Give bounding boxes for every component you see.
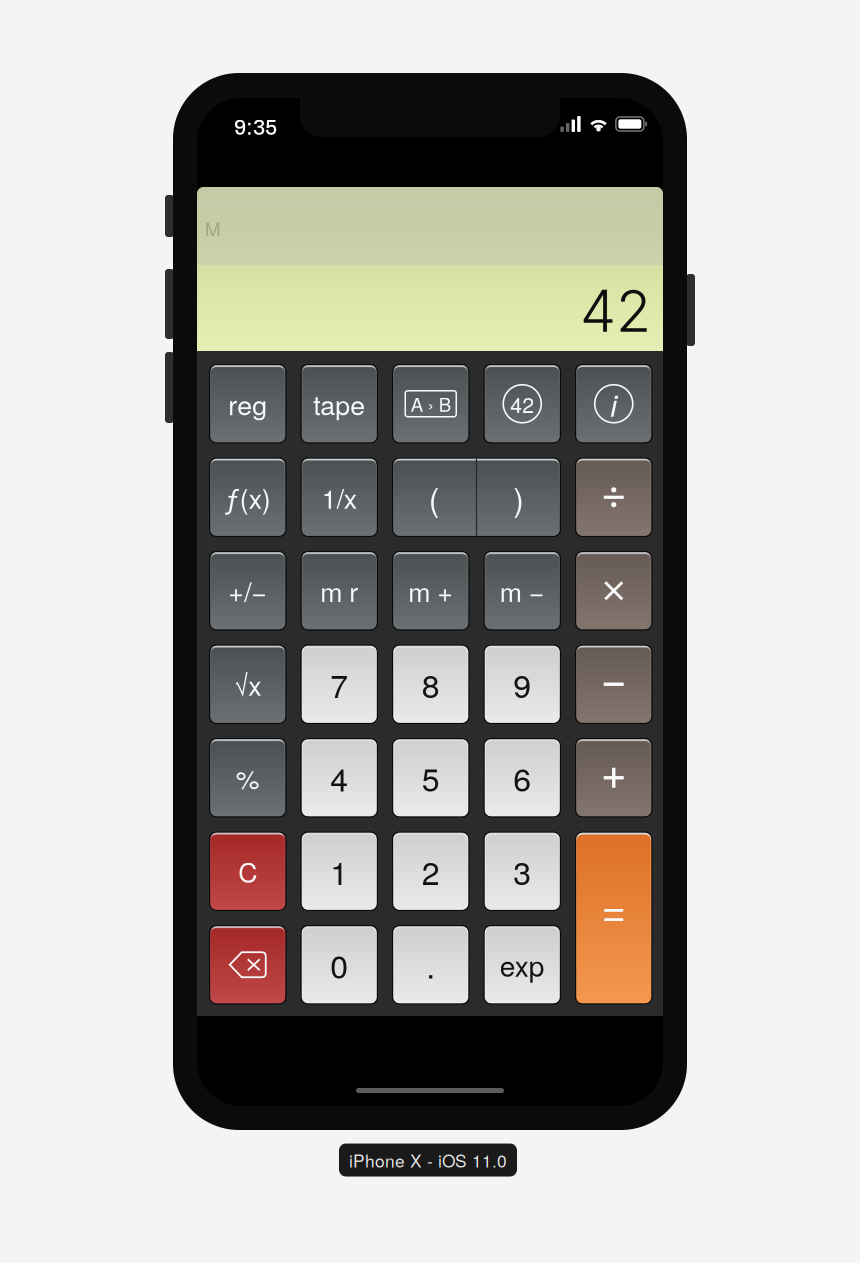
- staticText: C: [238, 852, 257, 890]
- staticText: m r: [320, 572, 358, 610]
- button[interactable]: 9: [483, 644, 561, 724]
- staticText: 0: [330, 942, 348, 988]
- staticText: 4: [330, 755, 348, 801]
- staticText: tape: [313, 385, 365, 423]
- button[interactable]: m +: [392, 551, 469, 630]
- staticText: 8: [422, 661, 440, 707]
- button[interactable]: ƒ(x): [209, 457, 286, 537]
- staticText: reg: [228, 385, 267, 423]
- staticText: 9: [513, 661, 531, 707]
- staticText: m +: [408, 572, 453, 610]
- button[interactable]: Info: [575, 364, 652, 443]
- button[interactable]: A › B: [392, 364, 469, 443]
- staticText: .: [426, 942, 435, 988]
- staticText: 6: [513, 755, 531, 801]
- button[interactable]: √x: [209, 644, 286, 724]
- button[interactable]: %: [209, 738, 286, 817]
- staticText: √x: [234, 665, 261, 703]
- staticText: 3: [513, 848, 531, 894]
- button[interactable]: 1: [300, 831, 378, 911]
- button[interactable]: .: [392, 925, 469, 1004]
- button[interactable]: 42: [483, 364, 561, 443]
- staticText: +/−: [228, 572, 267, 610]
- button[interactable]: Add: [575, 738, 652, 817]
- button[interactable]: 8: [392, 644, 469, 724]
- button[interactable]: Equals: [575, 831, 652, 1004]
- button[interactable]: 3: [483, 831, 561, 911]
- button[interactable]: Multiply: [575, 551, 652, 630]
- button[interactable]: 4: [300, 738, 378, 817]
- staticText: 9:35: [234, 116, 277, 139]
- staticText: ƒ(x): [225, 478, 271, 516]
- button[interactable]: reg: [209, 364, 286, 443]
- button[interactable]: Backspace: [209, 925, 286, 1004]
- staticText: A › B: [411, 390, 451, 417]
- staticText: 5: [422, 755, 440, 801]
- button[interactable]: m r: [300, 551, 378, 630]
- button[interactable]: m −: [483, 551, 561, 630]
- button[interactable]: 0: [300, 925, 378, 1004]
- button[interactable]: C: [209, 831, 286, 911]
- button[interactable]: 2: [392, 831, 469, 911]
- staticText: 1/x: [322, 478, 357, 516]
- staticText: 42: [580, 276, 651, 346]
- button[interactable]: Subtract: [575, 644, 652, 724]
- staticText: exp: [500, 945, 545, 985]
- button[interactable]: 6: [483, 738, 561, 817]
- staticText: 1: [330, 848, 348, 894]
- button[interactable]: (: [392, 457, 561, 537]
- button[interactable]: 7: [300, 644, 378, 724]
- staticText: 2: [422, 848, 440, 894]
- staticText: i: [610, 382, 617, 425]
- staticText: (: [429, 474, 440, 520]
- staticText: m −: [500, 572, 545, 610]
- staticText: 42: [510, 388, 534, 419]
- staticText: iPhone X - iOS 11.0: [349, 1148, 507, 1172]
- button[interactable]: +/−: [209, 551, 286, 630]
- button[interactable]: tape: [300, 364, 378, 443]
- button[interactable]: 5: [392, 738, 469, 817]
- button[interactable]: 1/x: [300, 457, 378, 537]
- staticText: M: [205, 215, 221, 242]
- staticText: 7: [330, 661, 348, 707]
- button[interactable]: Divide: [575, 457, 652, 537]
- staticText: ): [513, 474, 524, 520]
- button[interactable]: exp: [483, 925, 561, 1004]
- staticText: %: [236, 759, 260, 797]
